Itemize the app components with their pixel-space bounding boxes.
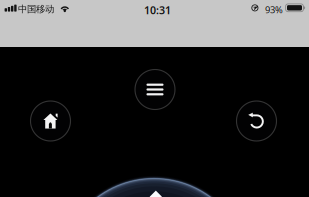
staticText: 93% bbox=[265, 3, 283, 16]
staticText: 中国移动 bbox=[18, 3, 54, 15]
button[interactable]: Home bbox=[30, 101, 70, 141]
staticText: 10:31 bbox=[144, 3, 171, 17]
button[interactable]: Menu bbox=[135, 69, 175, 109]
button[interactable]: Reset view bbox=[236, 101, 276, 141]
